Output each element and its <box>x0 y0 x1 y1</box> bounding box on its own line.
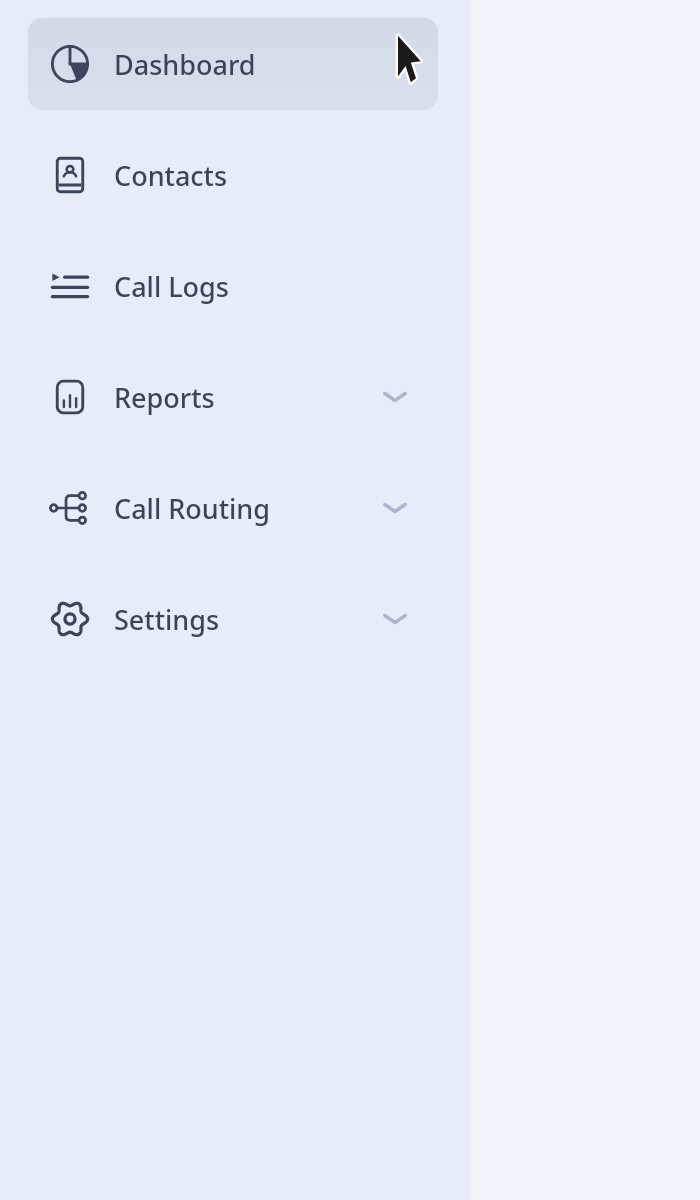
staticText: Contacts <box>114 157 228 194</box>
staticText: Settings <box>114 601 220 638</box>
staticText: Reports <box>114 379 215 416</box>
button[interactable]: Contacts <box>28 129 438 221</box>
button[interactable]: Call Logs <box>28 240 438 332</box>
button[interactable]: Settings <box>28 573 438 665</box>
button[interactable]: Dashboard <box>28 18 438 110</box>
staticText: Call Routing <box>114 490 270 527</box>
staticText: Call Logs <box>114 268 229 305</box>
button[interactable]: Call Routing <box>28 462 438 554</box>
staticText: Dashboard <box>114 46 256 83</box>
button[interactable]: Reports <box>28 351 438 443</box>
